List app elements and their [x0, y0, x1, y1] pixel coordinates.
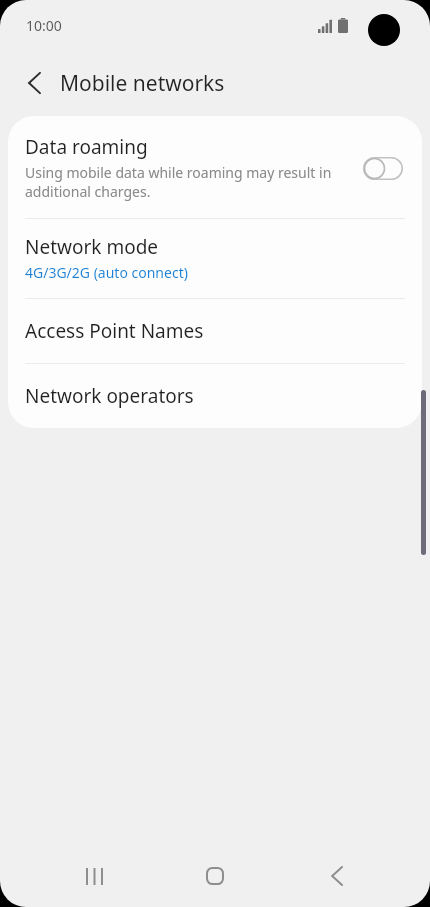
- staticText: Data roaming: [25, 134, 148, 160]
- button[interactable]: Data roaming toggle, off: [361, 153, 405, 183]
- button[interactable]: Recent apps: [66, 848, 122, 904]
- staticText: 4G/3G/2G (auto connect): [25, 263, 188, 282]
- button[interactable]: Network operators: [8, 364, 422, 428]
- staticText: 10:00: [26, 16, 62, 35]
- button[interactable]: Network mode: [8, 219, 422, 298]
- staticText: Access Point Names: [25, 318, 204, 344]
- button[interactable]: Data roaming: [8, 116, 422, 218]
- button[interactable]: Navigate up: [12, 61, 56, 105]
- staticText: Network operators: [25, 383, 194, 409]
- staticText: Mobile networks: [60, 69, 225, 98]
- button[interactable]: Home: [187, 848, 243, 904]
- staticText: Network mode: [25, 234, 159, 260]
- button[interactable]: Back: [309, 848, 365, 904]
- staticText: Using mobile data while roaming may resu…: [25, 163, 337, 201]
- button[interactable]: Access Point Names: [8, 299, 422, 363]
